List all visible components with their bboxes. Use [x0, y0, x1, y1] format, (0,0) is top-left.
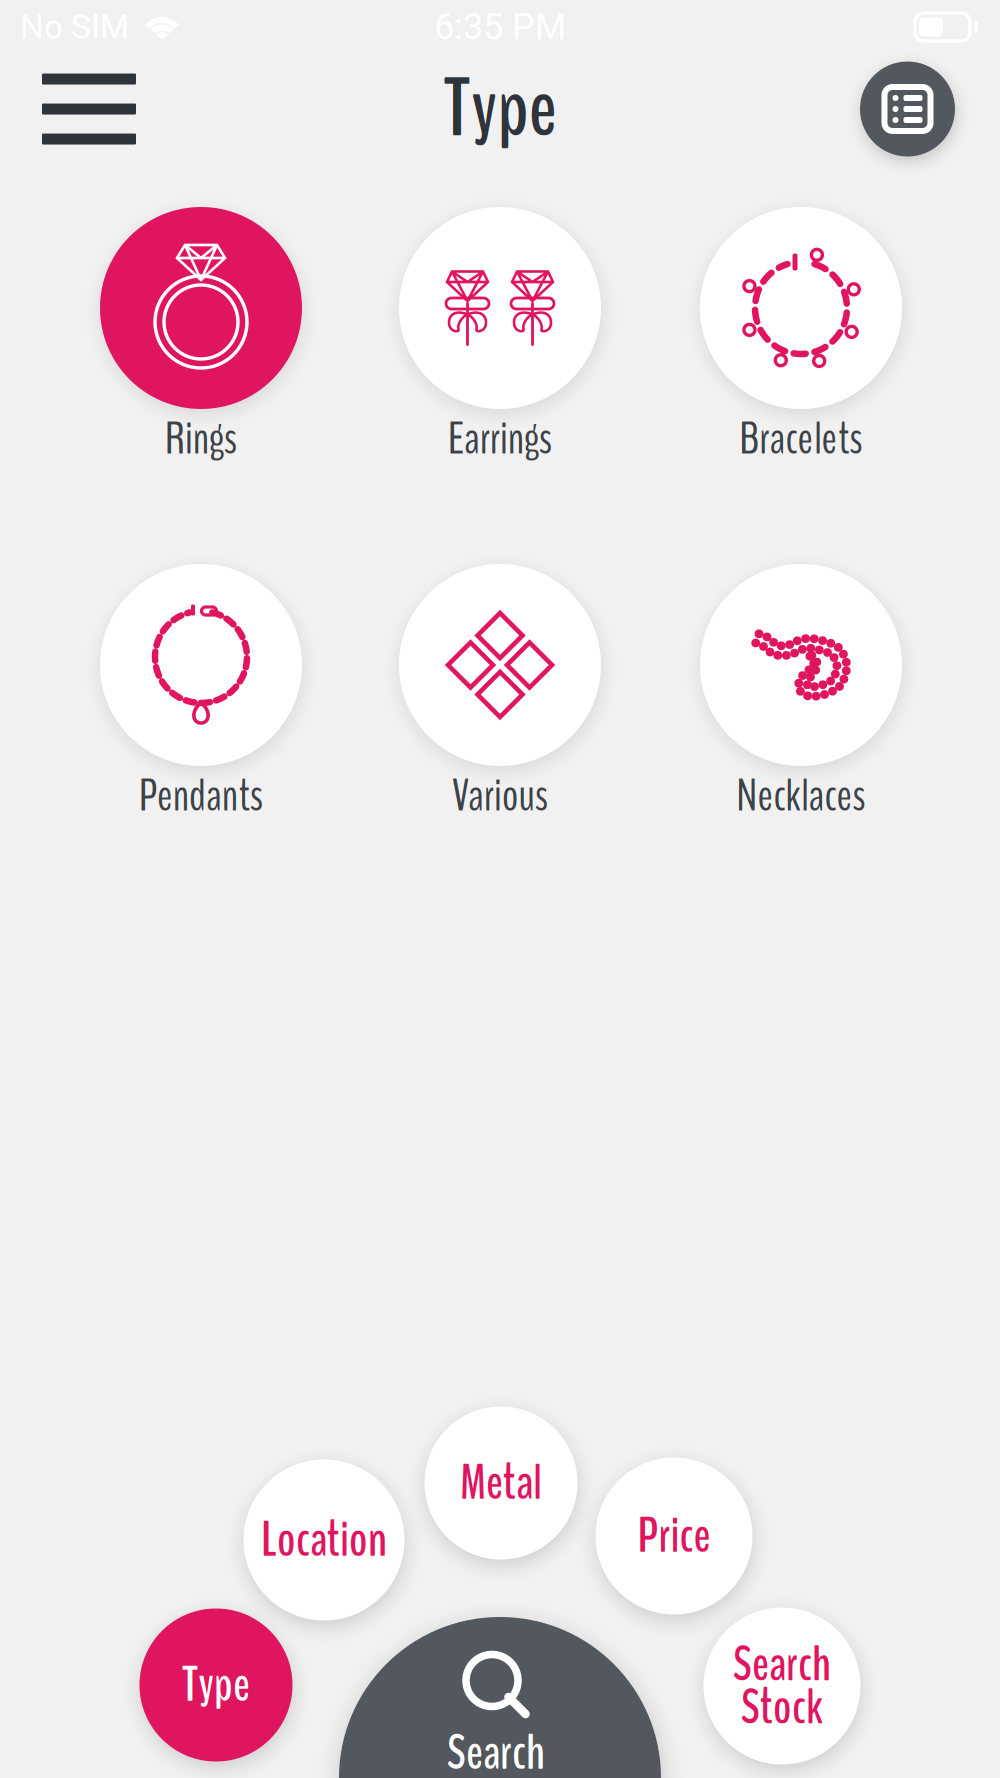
button[interactable]: Price [595, 1457, 752, 1614]
staticText: Search [447, 1720, 545, 1778]
staticText: Type [443, 54, 556, 164]
staticText: Bracelets [739, 409, 862, 469]
staticText: Various [452, 766, 548, 826]
staticText: No SIM [20, 7, 129, 47]
staticText: Earrings [448, 409, 552, 469]
staticText: Stock [741, 1674, 823, 1740]
button[interactable]: Location [243, 1459, 404, 1620]
staticText: 6:35 PM [434, 6, 566, 48]
button[interactable]: Necklaces [655, 564, 947, 826]
button[interactable]: Metal [424, 1406, 577, 1559]
staticText: Search [733, 1631, 831, 1697]
button[interactable]: Search [703, 1607, 860, 1764]
staticText: Metal [460, 1450, 542, 1516]
button[interactable]: List view [860, 61, 955, 156]
button[interactable]: Rings [55, 207, 347, 469]
staticText: Price [637, 1503, 710, 1569]
button[interactable]: Menu [26, 57, 152, 161]
staticText: Pendants [139, 766, 263, 826]
button[interactable]: Pendants [55, 564, 347, 826]
button[interactable]: Earrings [354, 207, 646, 469]
staticText: Type [182, 1652, 250, 1718]
staticText: Rings [165, 409, 237, 469]
staticText: Necklaces [736, 766, 865, 826]
button[interactable]: Various [354, 564, 646, 826]
button[interactable]: Bracelets [655, 207, 947, 469]
button[interactable]: Search [339, 1617, 661, 1778]
button[interactable]: Type [139, 1608, 292, 1761]
staticText: Location [261, 1507, 387, 1573]
